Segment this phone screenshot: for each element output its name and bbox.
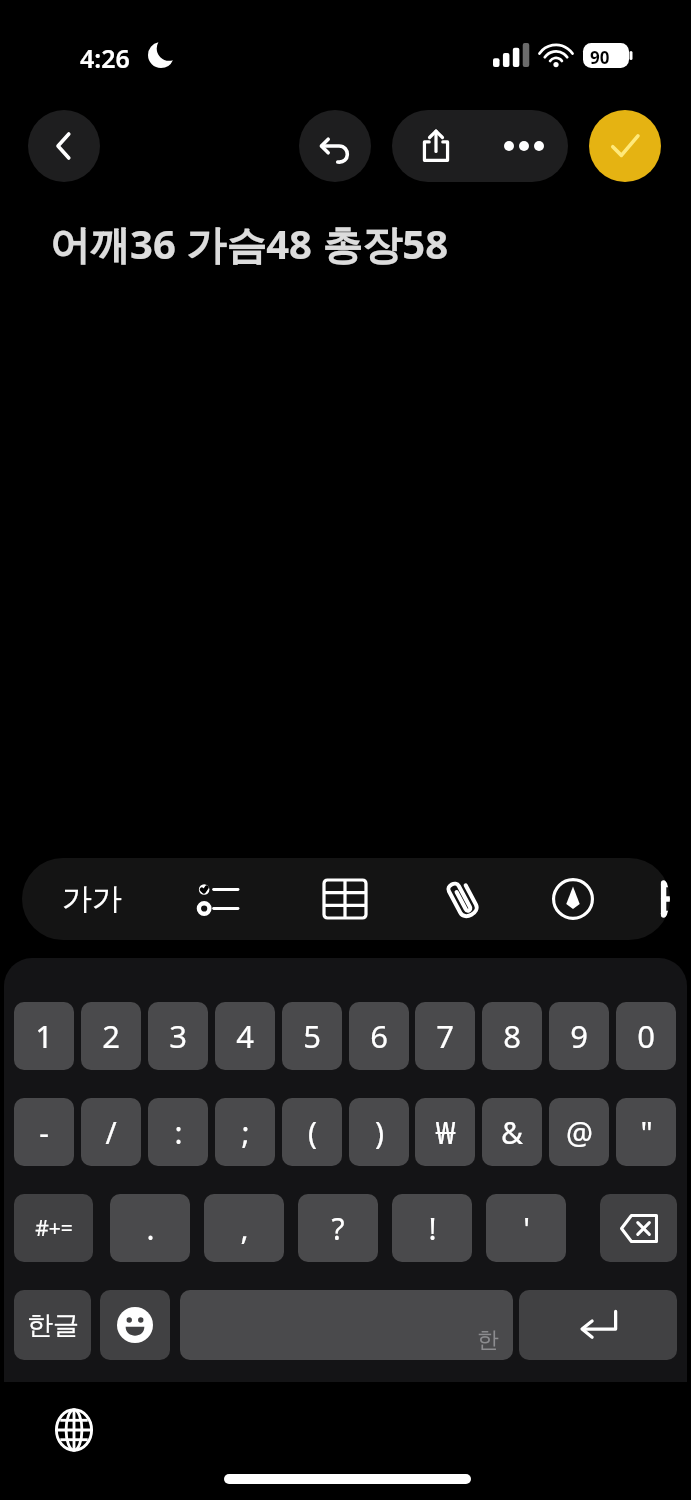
staticText: ! [428,1208,437,1249]
staticText: ; [241,1112,250,1153]
button[interactable]: Share [392,110,480,182]
staticText: 한글 [27,1309,79,1342]
button[interactable]: 7 [415,1002,475,1070]
button[interactable]: 4 [215,1002,275,1070]
button[interactable]: 1 [14,1002,74,1070]
staticText: ( [308,1112,317,1153]
button[interactable]: Space [180,1290,513,1360]
staticText: 9 [570,1015,588,1057]
button[interactable]: ₩ [415,1098,475,1166]
button[interactable]: ? [298,1194,378,1262]
button[interactable]: Backspace [600,1194,677,1262]
button[interactable]: ; [215,1098,275,1166]
button[interactable]: 0 [616,1002,676,1070]
staticText: ' [523,1208,530,1249]
button[interactable]: @ [549,1098,609,1166]
staticText: ₩ [435,1112,456,1153]
staticText: ? [331,1208,345,1249]
button[interactable]: 한글 [14,1290,91,1360]
staticText: " [640,1112,653,1153]
button[interactable]: 9 [549,1002,609,1070]
button[interactable]: Done [589,110,661,182]
staticText: 4:26 [80,41,130,75]
staticText: 6 [370,1015,388,1057]
staticText: ) [375,1112,384,1153]
staticText: 2 [102,1015,120,1057]
staticText: @ [566,1112,593,1153]
button[interactable]: 8 [482,1002,542,1070]
staticText: #+= [35,1214,73,1243]
button[interactable]: : [148,1098,208,1166]
staticText: 7 [436,1015,454,1057]
button[interactable]: Attach [418,858,508,940]
button[interactable]: ) [349,1098,409,1166]
button[interactable]: Back [28,110,100,182]
button[interactable]: 6 [349,1002,409,1070]
staticText: 가가 [62,880,122,918]
button[interactable]: ! [392,1194,472,1262]
button[interactable]: Checklist [172,858,262,940]
button[interactable]: & [482,1098,542,1166]
staticText: 90 [590,46,610,69]
button[interactable]: - [14,1098,74,1166]
staticText: & [501,1112,523,1153]
button[interactable]: ' [486,1194,566,1262]
button[interactable]: , [204,1194,284,1262]
button[interactable]: ( [282,1098,342,1166]
staticText: 어깨36 가슴48 총장58 [50,216,449,271]
button[interactable]: . [110,1194,190,1262]
staticText: 0 [637,1015,655,1057]
staticText: 4 [236,1015,254,1057]
staticText: / [105,1112,117,1153]
button[interactable]: 가가 [40,858,144,940]
staticText: 8 [503,1015,521,1057]
staticText: : [174,1112,183,1153]
button[interactable]: / [81,1098,141,1166]
button[interactable]: Return [519,1290,677,1360]
staticText: - [39,1112,49,1153]
staticText: , [240,1208,249,1249]
button[interactable]: More options [480,110,568,182]
staticText: 5 [303,1015,321,1057]
staticText: 한 [477,1326,499,1354]
button[interactable]: 5 [282,1002,342,1070]
button[interactable]: Table [300,858,390,940]
button[interactable]: Emoji [100,1290,170,1360]
button[interactable]: #+= [14,1194,93,1262]
button[interactable]: Change keyboard [42,1398,106,1462]
button[interactable]: Undo [299,110,371,182]
staticText: 1 [35,1015,53,1057]
staticText: . [146,1208,155,1249]
button[interactable]: Markup [528,858,618,940]
staticText: 3 [169,1015,187,1057]
button[interactable]: 3 [148,1002,208,1070]
button[interactable]: 2 [81,1002,141,1070]
button[interactable]: " [616,1098,676,1166]
